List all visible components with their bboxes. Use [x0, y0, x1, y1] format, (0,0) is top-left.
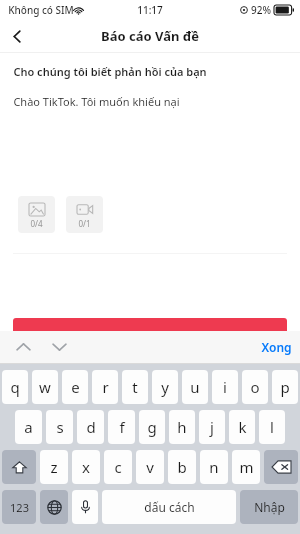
staticText: 92%	[251, 3, 271, 17]
staticText: v	[146, 457, 154, 477]
button[interactable]: m	[232, 450, 260, 484]
staticText: c	[114, 457, 122, 477]
staticText: 11:17	[137, 3, 163, 17]
button[interactable]: e	[62, 370, 88, 404]
button[interactable]: p	[272, 370, 298, 404]
button[interactable]: r	[92, 370, 118, 404]
staticText: Chào TikTok. Tôi muốn khiếu nại	[13, 94, 180, 109]
staticText: Báo cáo Vấn đề	[101, 27, 199, 45]
staticText: o	[250, 377, 260, 397]
button[interactable]: dấu cách	[102, 490, 236, 524]
staticText: 0/1	[78, 218, 91, 229]
staticText: i	[223, 377, 227, 397]
button[interactable]: Delete	[264, 450, 298, 484]
staticText: Xong	[261, 339, 292, 355]
staticText: 123	[10, 500, 29, 515]
staticText: m	[239, 457, 254, 477]
button[interactable]: Nhập	[240, 490, 298, 524]
staticText: k	[238, 417, 247, 437]
staticText: Nhập	[254, 499, 285, 515]
staticText: 0/4	[30, 218, 43, 229]
staticText: d	[86, 417, 96, 437]
staticText: z	[50, 457, 58, 477]
button[interactable]: s	[46, 410, 73, 444]
button[interactable]: v	[136, 450, 164, 484]
button[interactable]: w	[32, 370, 58, 404]
staticText: Không có SIM	[8, 3, 74, 17]
staticText: y	[161, 377, 169, 397]
staticText: u	[190, 377, 200, 397]
staticText: w	[39, 377, 51, 397]
button[interactable]	[13, 318, 287, 358]
button[interactable]: h	[169, 410, 195, 444]
button[interactable]: d	[77, 410, 104, 444]
button[interactable]: b	[168, 450, 196, 484]
button[interactable]: Xong	[261, 339, 292, 355]
staticText: j	[210, 417, 214, 437]
staticText: l	[270, 417, 274, 437]
staticText: n	[209, 457, 219, 477]
button[interactable]: y	[152, 370, 178, 404]
staticText: r	[102, 377, 109, 397]
button[interactable]: Dictation	[72, 490, 98, 524]
button[interactable]: Previous field	[12, 336, 34, 358]
button[interactable]: l	[259, 410, 285, 444]
staticText: g	[147, 417, 157, 437]
button[interactable]: n	[200, 450, 228, 484]
button[interactable]: o	[242, 370, 268, 404]
staticText: p	[280, 377, 290, 397]
button[interactable]: x	[72, 450, 100, 484]
button[interactable]: c	[104, 450, 132, 484]
button[interactable]: a	[15, 410, 42, 444]
staticText: q	[10, 377, 20, 397]
button[interactable]: q	[2, 370, 28, 404]
button[interactable]: z	[40, 450, 68, 484]
staticText: t	[132, 377, 138, 397]
button[interactable]: Add photo	[18, 196, 55, 233]
button[interactable]: Emoji / language	[40, 490, 68, 524]
button[interactable]: k	[229, 410, 255, 444]
staticText: h	[177, 417, 187, 437]
button[interactable]: Shift	[2, 450, 36, 484]
button[interactable]: Add video	[66, 196, 103, 233]
button[interactable]: Next field	[48, 336, 70, 358]
staticText: s	[56, 417, 64, 437]
button[interactable]: Back	[0, 20, 34, 52]
staticText: e	[71, 377, 80, 397]
button[interactable]: i	[212, 370, 238, 404]
button[interactable]: t	[122, 370, 148, 404]
staticText: f	[119, 417, 125, 437]
staticText: dấu cách	[144, 499, 195, 515]
button[interactable]: u	[182, 370, 208, 404]
button[interactable]: f	[108, 410, 135, 444]
button[interactable]: g	[139, 410, 165, 444]
staticText: x	[82, 457, 90, 477]
staticText: Cho chúng tôi biết phản hồi của bạn	[13, 64, 207, 79]
button[interactable]: j	[199, 410, 225, 444]
staticText: a	[24, 417, 33, 437]
staticText: b	[177, 457, 187, 477]
button[interactable]: 123	[2, 490, 36, 524]
